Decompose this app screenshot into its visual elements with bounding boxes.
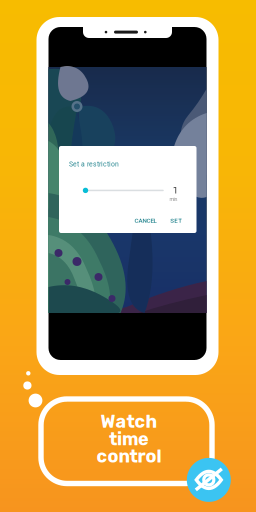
staticText: SET [170,217,182,224]
staticText: Watch [100,411,157,432]
staticText: min. [169,196,178,202]
staticText: 1 [173,185,178,196]
button[interactable]: SET [170,217,182,224]
staticText: CANCEL [134,217,156,224]
button[interactable]: Hide content [187,458,231,502]
staticText: control [96,446,161,467]
button[interactable]: CANCEL [134,217,156,224]
staticText: time [109,428,149,450]
staticText: Set a restriction [69,160,119,168]
